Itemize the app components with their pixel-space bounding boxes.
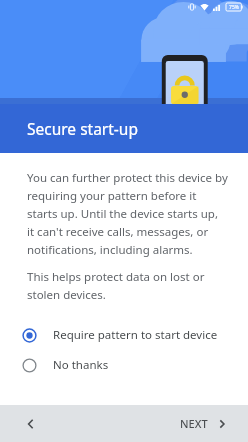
button[interactable]: No thanks [0,350,248,380]
button[interactable]: Require pattern to start device [0,320,248,350]
staticText: You can further protect this device by r… [27,170,228,257]
staticText: NEXT [180,416,208,431]
button[interactable]: Back [17,410,45,438]
staticText: Secure start-up [27,118,138,139]
staticText: Require pattern to start device [53,327,218,343]
button[interactable]: NEXT [174,410,234,437]
staticText: No thanks [53,357,109,373]
staticText: This helps protect data on lost or stole… [27,269,208,302]
staticText: 75% [229,4,239,11]
